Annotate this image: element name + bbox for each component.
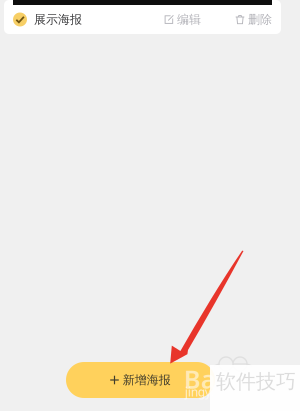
staticText: jingy. xyxy=(185,384,214,400)
button[interactable]: 编辑 xyxy=(164,6,201,33)
button[interactable]: 新增海报 xyxy=(66,362,215,398)
staticText: 展示海报 xyxy=(34,12,82,27)
button[interactable]: 删除 xyxy=(235,6,272,33)
staticText: 编辑 xyxy=(177,12,201,27)
staticText: Ba xyxy=(184,362,216,396)
staticText: 删除 xyxy=(248,12,272,27)
staticText: 新增海报 xyxy=(123,373,171,387)
staticText: 软件技巧 xyxy=(216,369,296,394)
